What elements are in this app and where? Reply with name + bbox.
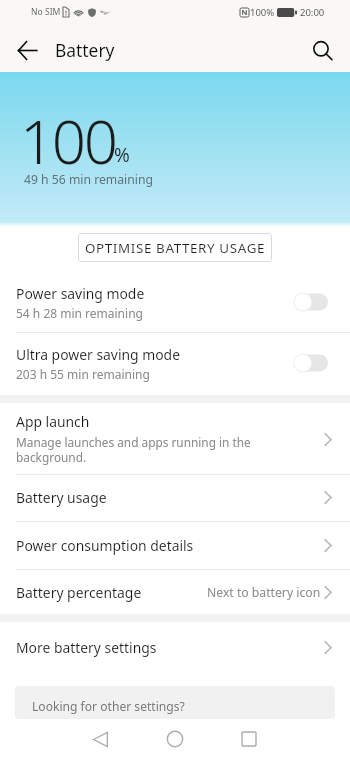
staticText: Ultra power saving mode [16,345,180,364]
button[interactable]: Toggle switch [294,291,328,313]
staticText: 49 h 56 min remaining [24,171,153,188]
button[interactable]: Search [299,27,347,75]
button[interactable]: Ultra power saving mode [0,333,350,393]
button[interactable]: Power consumption details [0,521,350,569]
staticText: Battery [55,38,115,62]
button[interactable]: Home [153,721,197,757]
button[interactable]: Battery percentage [0,569,350,615]
button[interactable]: Power saving mode [0,272,350,332]
staticText: Looking for other settings? [32,698,185,714]
staticText: Power saving mode [16,284,145,303]
button[interactable]: Recents [227,721,271,757]
staticText: OPTIMISE BATTERY USAGE [85,239,266,257]
staticText: 20:00 [300,6,325,19]
button[interactable]: App launch [0,403,350,474]
button[interactable]: OPTIMISE BATTERY USAGE [78,233,272,262]
staticText: 100 [20,100,116,182]
staticText: Battery percentage [16,583,142,602]
staticText: Next to battery icon [207,584,321,601]
button[interactable]: Toggle switch [294,352,328,374]
staticText: % [114,142,130,168]
staticText: 100% [250,6,275,19]
button[interactable]: Battery usage [0,474,350,521]
staticText: Manage launches and apps running in the … [16,434,251,465]
staticText: 54 h 28 min remaining [16,305,143,321]
button[interactable]: Back [4,26,50,74]
button[interactable]: More battery settings [0,623,350,671]
staticText: App launch [16,412,90,431]
staticText: Battery usage [16,488,107,507]
button[interactable]: Back [78,721,122,757]
button[interactable]: Looking for other settings? [15,686,335,719]
staticText: More battery settings [16,638,157,657]
staticText: 203 h 55 min remaining [16,366,150,382]
staticText: Power consumption details [16,536,194,555]
staticText: No SIM [31,6,61,18]
